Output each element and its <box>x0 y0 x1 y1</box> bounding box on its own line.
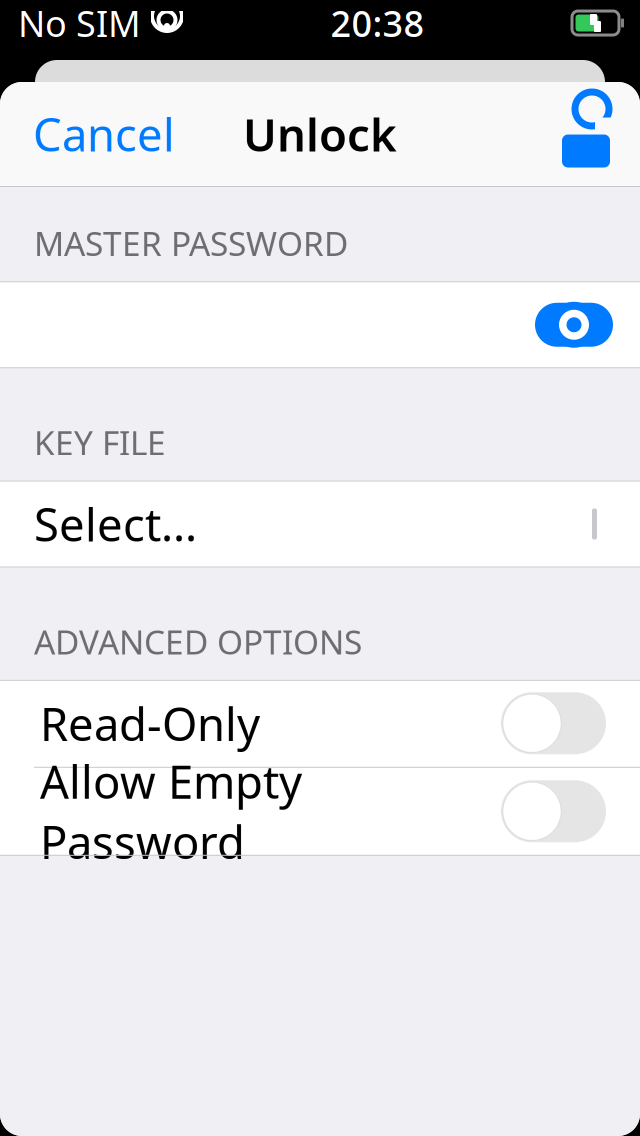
button[interactable]: Cancel <box>0 82 208 186</box>
staticText: No SIM <box>18 0 141 47</box>
button[interactable]: Unlock <box>532 82 640 186</box>
staticText: Cancel <box>33 104 175 164</box>
staticText: KEY FILE <box>34 420 166 465</box>
staticText: MASTER PASSWORD <box>34 221 348 265</box>
button[interactable]: Select... <box>0 480 640 567</box>
staticText: Read-Only <box>40 693 260 753</box>
button[interactable]: Show password <box>508 281 640 368</box>
staticText: Select... <box>34 494 197 554</box>
staticText: Unlock <box>243 104 397 164</box>
staticText: Allow Empty Password <box>40 751 302 871</box>
staticText: 20:38 <box>330 0 424 47</box>
button[interactable]: Read-Only <box>0 680 640 767</box>
staticText: ADVANCED OPTIONS <box>34 619 362 664</box>
button[interactable]: Allow Empty Password <box>0 768 640 855</box>
